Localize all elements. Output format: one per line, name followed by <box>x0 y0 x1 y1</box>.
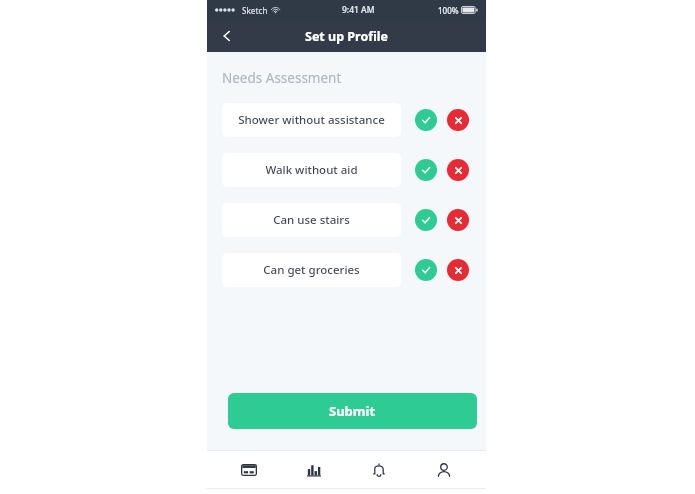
button[interactable]: Shower without assistance <box>222 103 401 137</box>
staticText: Needs Assessment <box>222 69 342 87</box>
staticText: Walk without aid <box>265 162 358 178</box>
staticText: Can use stairs <box>273 212 350 228</box>
button[interactable]: Yes <box>415 209 437 231</box>
button[interactable]: Back <box>213 22 241 50</box>
button[interactable]: Statistics <box>291 452 337 488</box>
button[interactable]: Can get groceries <box>222 253 401 287</box>
staticText: 100% <box>438 5 459 16</box>
button[interactable]: Walk without aid <box>222 153 401 187</box>
button[interactable]: Can use stairs <box>222 203 401 237</box>
button[interactable]: No <box>447 109 469 131</box>
button[interactable]: Wallet <box>226 452 272 488</box>
button[interactable]: No <box>447 259 469 281</box>
staticText: Shower without assistance <box>238 112 385 128</box>
staticText: Set up Profile <box>305 28 388 45</box>
button[interactable]: Yes <box>415 259 437 281</box>
staticText: Sketch <box>242 5 268 16</box>
button[interactable]: Yes <box>415 109 437 131</box>
staticText: Submit <box>329 402 376 420</box>
button[interactable]: No <box>447 159 469 181</box>
button[interactable]: Submit <box>228 393 477 429</box>
staticText: Can get groceries <box>263 262 360 278</box>
button[interactable]: Profile <box>421 452 467 488</box>
staticText: 9:41 AM <box>342 4 375 16</box>
button[interactable]: Notifications <box>356 452 402 488</box>
button[interactable]: No <box>447 209 469 231</box>
button[interactable]: Yes <box>415 159 437 181</box>
